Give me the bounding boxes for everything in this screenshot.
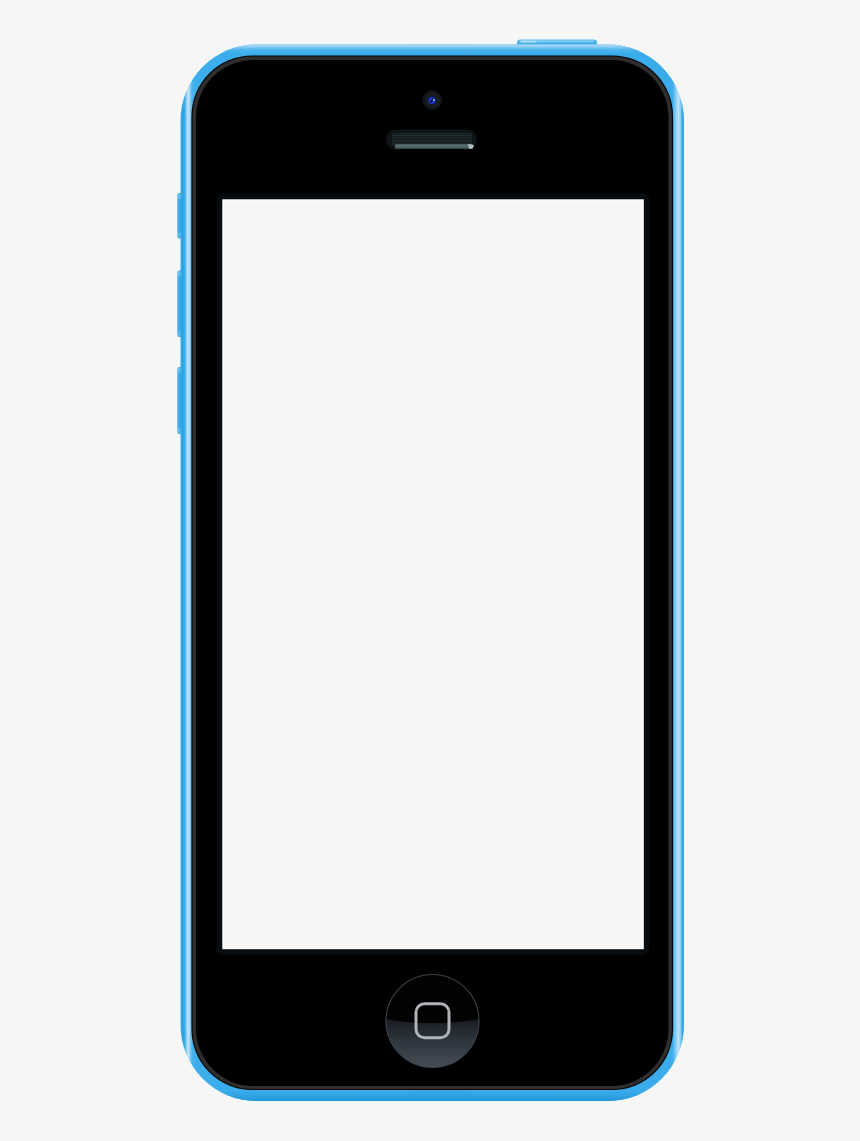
button[interactable]: Power button [517, 34, 597, 50]
button[interactable]: Ring / silent switch [174, 193, 186, 239]
button[interactable]: Home button [386, 975, 479, 1068]
button[interactable]: Volume down [174, 367, 186, 434]
button[interactable]: Phone screen [222, 199, 644, 949]
button[interactable]: Volume up [174, 271, 186, 338]
